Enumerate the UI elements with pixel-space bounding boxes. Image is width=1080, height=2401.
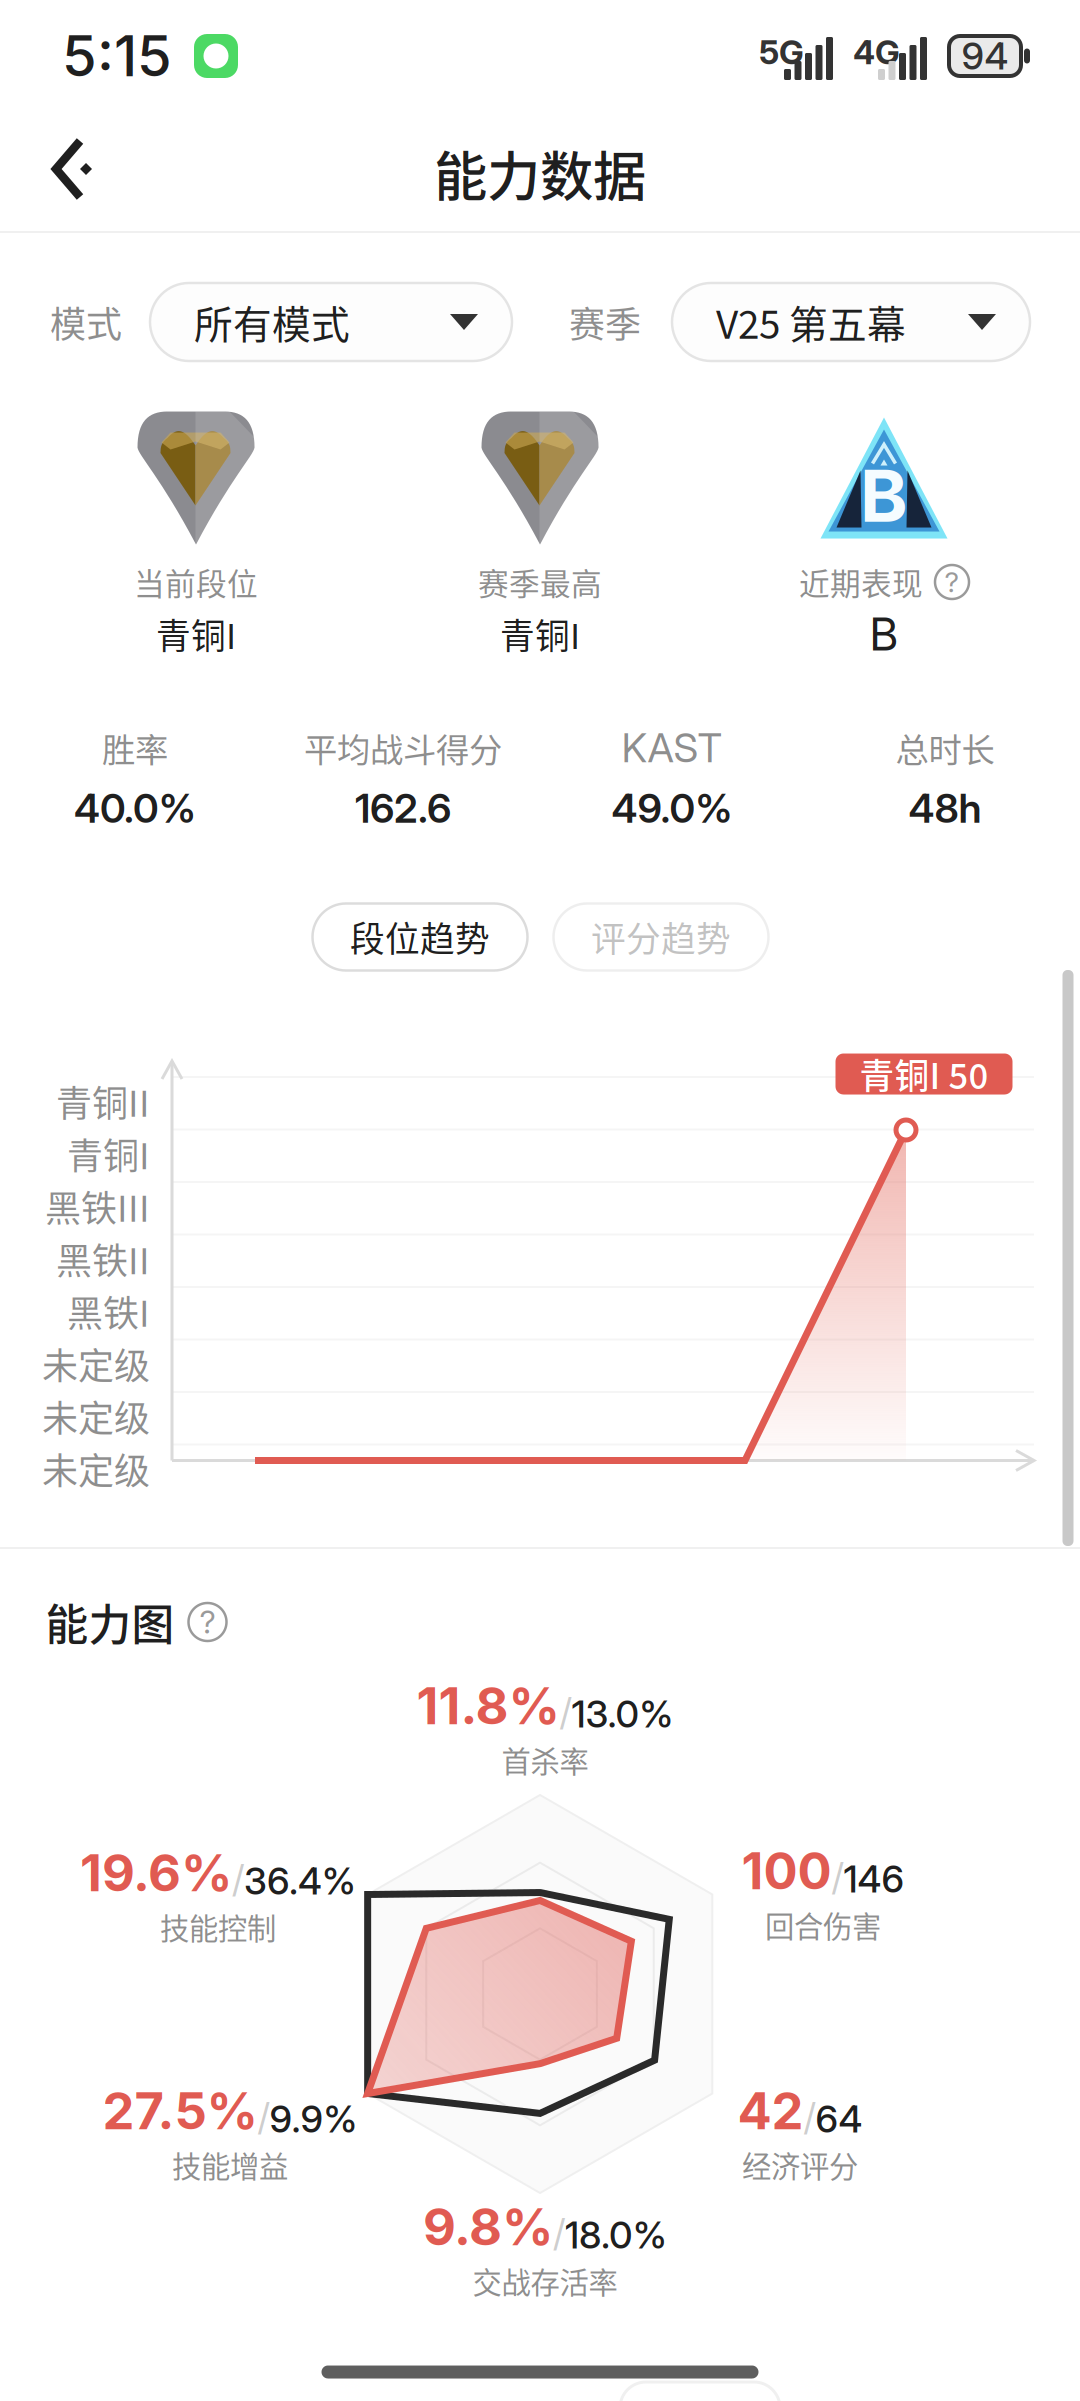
- staticText: /: [553, 2210, 565, 2255]
- staticText: 未定级: [42, 1390, 150, 1442]
- button[interactable]: 返回: [22, 114, 132, 224]
- staticText: ?: [199, 1603, 215, 1641]
- staticText: 黑铁III: [45, 1180, 150, 1232]
- staticText: /: [257, 2094, 269, 2139]
- staticText: 段位趋势: [350, 912, 490, 962]
- staticText: 平均战斗得分: [304, 724, 502, 772]
- button[interactable]: 所有模式: [150, 283, 512, 361]
- staticText: 青铜I 50: [859, 1049, 988, 1099]
- staticText: V25 第五幕: [716, 294, 906, 350]
- staticText: /: [831, 1854, 843, 1899]
- staticText: 胜率: [102, 724, 168, 772]
- staticText: 5:15: [62, 22, 172, 90]
- button[interactable]: 段位趋势: [312, 903, 527, 970]
- staticText: 49.0%: [611, 784, 732, 832]
- staticText: 9.8%: [423, 2196, 553, 2257]
- staticText: 4G: [853, 32, 900, 72]
- staticText: 技能控制: [160, 1905, 276, 1948]
- staticText: 总时长: [895, 724, 994, 772]
- staticText: 146: [843, 1856, 904, 1901]
- staticText: 黑铁I: [67, 1285, 150, 1337]
- staticText: 27.5%: [102, 2080, 257, 2141]
- staticText: 青铜I: [67, 1127, 150, 1179]
- staticText: 100: [741, 1840, 831, 1901]
- staticText: 赛季: [569, 296, 641, 348]
- staticText: B: [869, 607, 899, 661]
- staticText: 64: [815, 2096, 862, 2141]
- staticText: 48h: [908, 784, 981, 832]
- staticText: 13.0%: [571, 1691, 673, 1736]
- staticText: 当前段位: [134, 560, 258, 604]
- staticText: 黑铁II: [56, 1232, 150, 1284]
- staticText: 94: [961, 33, 1008, 79]
- staticText: 评分趋势: [591, 912, 731, 962]
- staticText: 青铜II: [56, 1075, 150, 1127]
- staticText: 赛季最高: [478, 560, 602, 604]
- button[interactable]: 评分趋势: [553, 903, 768, 970]
- staticText: 所有模式: [194, 294, 350, 350]
- button[interactable]: V25 第五幕: [672, 283, 1030, 361]
- staticText: 回合伤害: [765, 1903, 881, 1946]
- staticText: 能力数据: [434, 134, 646, 212]
- staticText: 9.9%: [269, 2096, 357, 2141]
- staticText: 40.0%: [74, 784, 196, 832]
- staticText: /: [232, 1856, 244, 1901]
- staticText: 首杀率: [501, 1738, 588, 1781]
- staticText: 未定级: [42, 1442, 150, 1494]
- staticText: 未定级: [42, 1337, 150, 1389]
- staticText: 36.4%: [244, 1858, 356, 1903]
- staticText: B: [860, 452, 908, 539]
- staticText: 11.8%: [416, 1675, 559, 1736]
- staticText: 模式: [50, 296, 122, 348]
- staticText: 近期表现: [799, 560, 923, 604]
- staticText: 青铜I: [500, 609, 580, 659]
- staticText: 18.0%: [565, 2212, 667, 2257]
- staticText: 5G: [759, 32, 804, 72]
- staticText: 162.6: [355, 784, 451, 832]
- staticText: /: [803, 2094, 815, 2139]
- staticText: 青铜I: [156, 609, 236, 659]
- staticText: 42: [737, 2080, 803, 2141]
- staticText: 19.6%: [80, 1842, 232, 1903]
- staticText: 能力图: [45, 1591, 174, 1653]
- staticText: KAST: [621, 724, 722, 772]
- staticText: 经济评分: [742, 2143, 858, 2186]
- staticText: /: [559, 1689, 571, 1734]
- staticText: 交战存活率: [472, 2259, 617, 2302]
- staticText: 技能增益: [172, 2143, 288, 2186]
- staticText: ?: [944, 565, 959, 599]
